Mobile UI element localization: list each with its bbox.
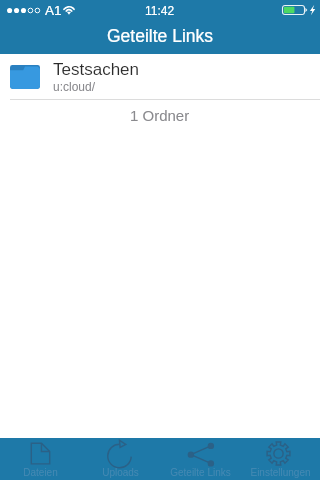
staticText: u:cloud/ [53,80,96,93]
button[interactable]: Geteilte Links [160,438,240,480]
button[interactable]: Dateien [0,438,80,480]
staticText: Testsachen [53,60,139,79]
staticText: Einstellungen [250,467,311,478]
staticText: 11:42 [145,4,175,17]
staticText: Dateien [23,467,58,478]
staticText: Geteilte Links [107,26,214,46]
staticText: 1 Ordner [130,107,190,124]
staticText: A1 [45,3,62,18]
button[interactable]: Uploads [80,438,160,480]
button[interactable]: Einstellungen [240,438,320,480]
staticText: Uploads [102,467,139,478]
staticText: Geteilte Links [170,467,231,478]
button[interactable]: Testsachen [0,54,320,99]
